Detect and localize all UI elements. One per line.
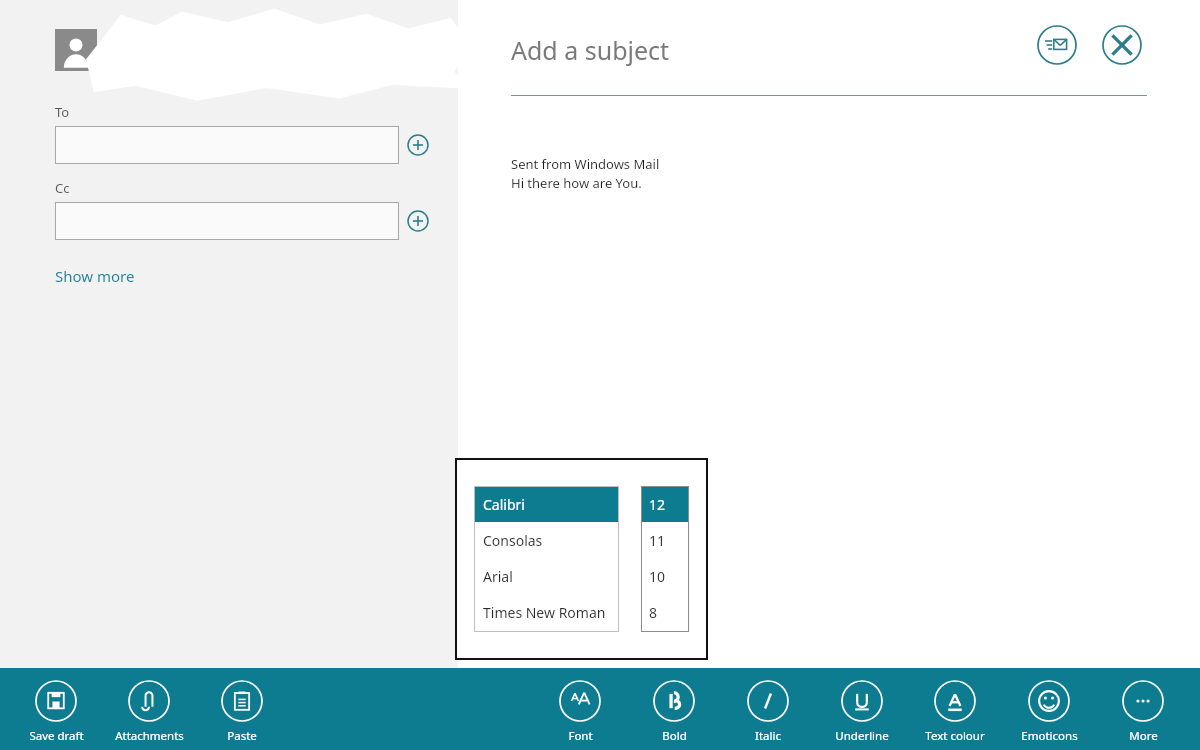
button[interactable]: Underline	[815, 680, 909, 750]
staticText: Consolas	[483, 531, 543, 550]
button[interactable]: Consolas	[474, 522, 619, 558]
staticText: Calibri	[483, 495, 525, 514]
button[interactable]	[55, 126, 399, 164]
button[interactable]: 10	[641, 558, 689, 594]
staticText: Save draft	[29, 728, 84, 744]
button[interactable]: Attachments	[102, 680, 196, 750]
button[interactable]: Calibri	[474, 486, 619, 522]
staticText: Times New Roman	[483, 603, 606, 622]
staticText: Italic	[755, 728, 781, 744]
button[interactable]: 12	[641, 486, 689, 522]
button[interactable]: 11	[641, 522, 689, 558]
button[interactable]: Arial	[474, 558, 619, 594]
button[interactable]: Italic	[721, 680, 815, 750]
button[interactable]: Times New Roman	[474, 594, 619, 630]
staticText: Text colour	[925, 728, 985, 744]
staticText: Sent from Windows Mail	[511, 155, 660, 173]
staticText: 10	[649, 567, 666, 586]
staticText: Show more	[55, 266, 135, 286]
button[interactable]: Emoticons	[1002, 680, 1096, 750]
button[interactable]: Paste	[195, 680, 289, 750]
button[interactable]: Send	[1037, 25, 1077, 65]
button[interactable]: Font	[533, 680, 627, 750]
staticText: Cc	[55, 179, 70, 197]
button[interactable]: Add To recipient	[407, 134, 429, 156]
button[interactable]: 8	[641, 594, 689, 630]
staticText: 12	[649, 495, 666, 514]
staticText: 8	[649, 603, 658, 622]
button[interactable]: Close	[1102, 25, 1142, 65]
staticText: Font	[568, 728, 593, 744]
staticText: Arial	[483, 567, 513, 586]
button[interactable]: More	[1096, 680, 1190, 750]
staticText: Underline	[835, 728, 889, 744]
staticText: 11	[649, 531, 666, 550]
button[interactable]: Add Cc recipient	[407, 210, 429, 232]
staticText: Hi there how are You.	[511, 174, 642, 192]
staticText: Emoticons	[1021, 728, 1078, 744]
button[interactable]	[55, 202, 399, 240]
button[interactable]: Show more	[55, 266, 135, 286]
staticText: To	[55, 103, 70, 121]
button[interactable]: Text colour	[908, 680, 1002, 750]
staticText: Paste	[227, 728, 257, 744]
button[interactable]: Add a subject	[511, 33, 670, 67]
button[interactable]: Bold	[627, 680, 721, 750]
staticText: Bold	[662, 728, 687, 744]
staticText: Attachments	[115, 728, 184, 744]
button[interactable]: Save draft	[9, 680, 103, 750]
staticText: More	[1129, 728, 1158, 744]
